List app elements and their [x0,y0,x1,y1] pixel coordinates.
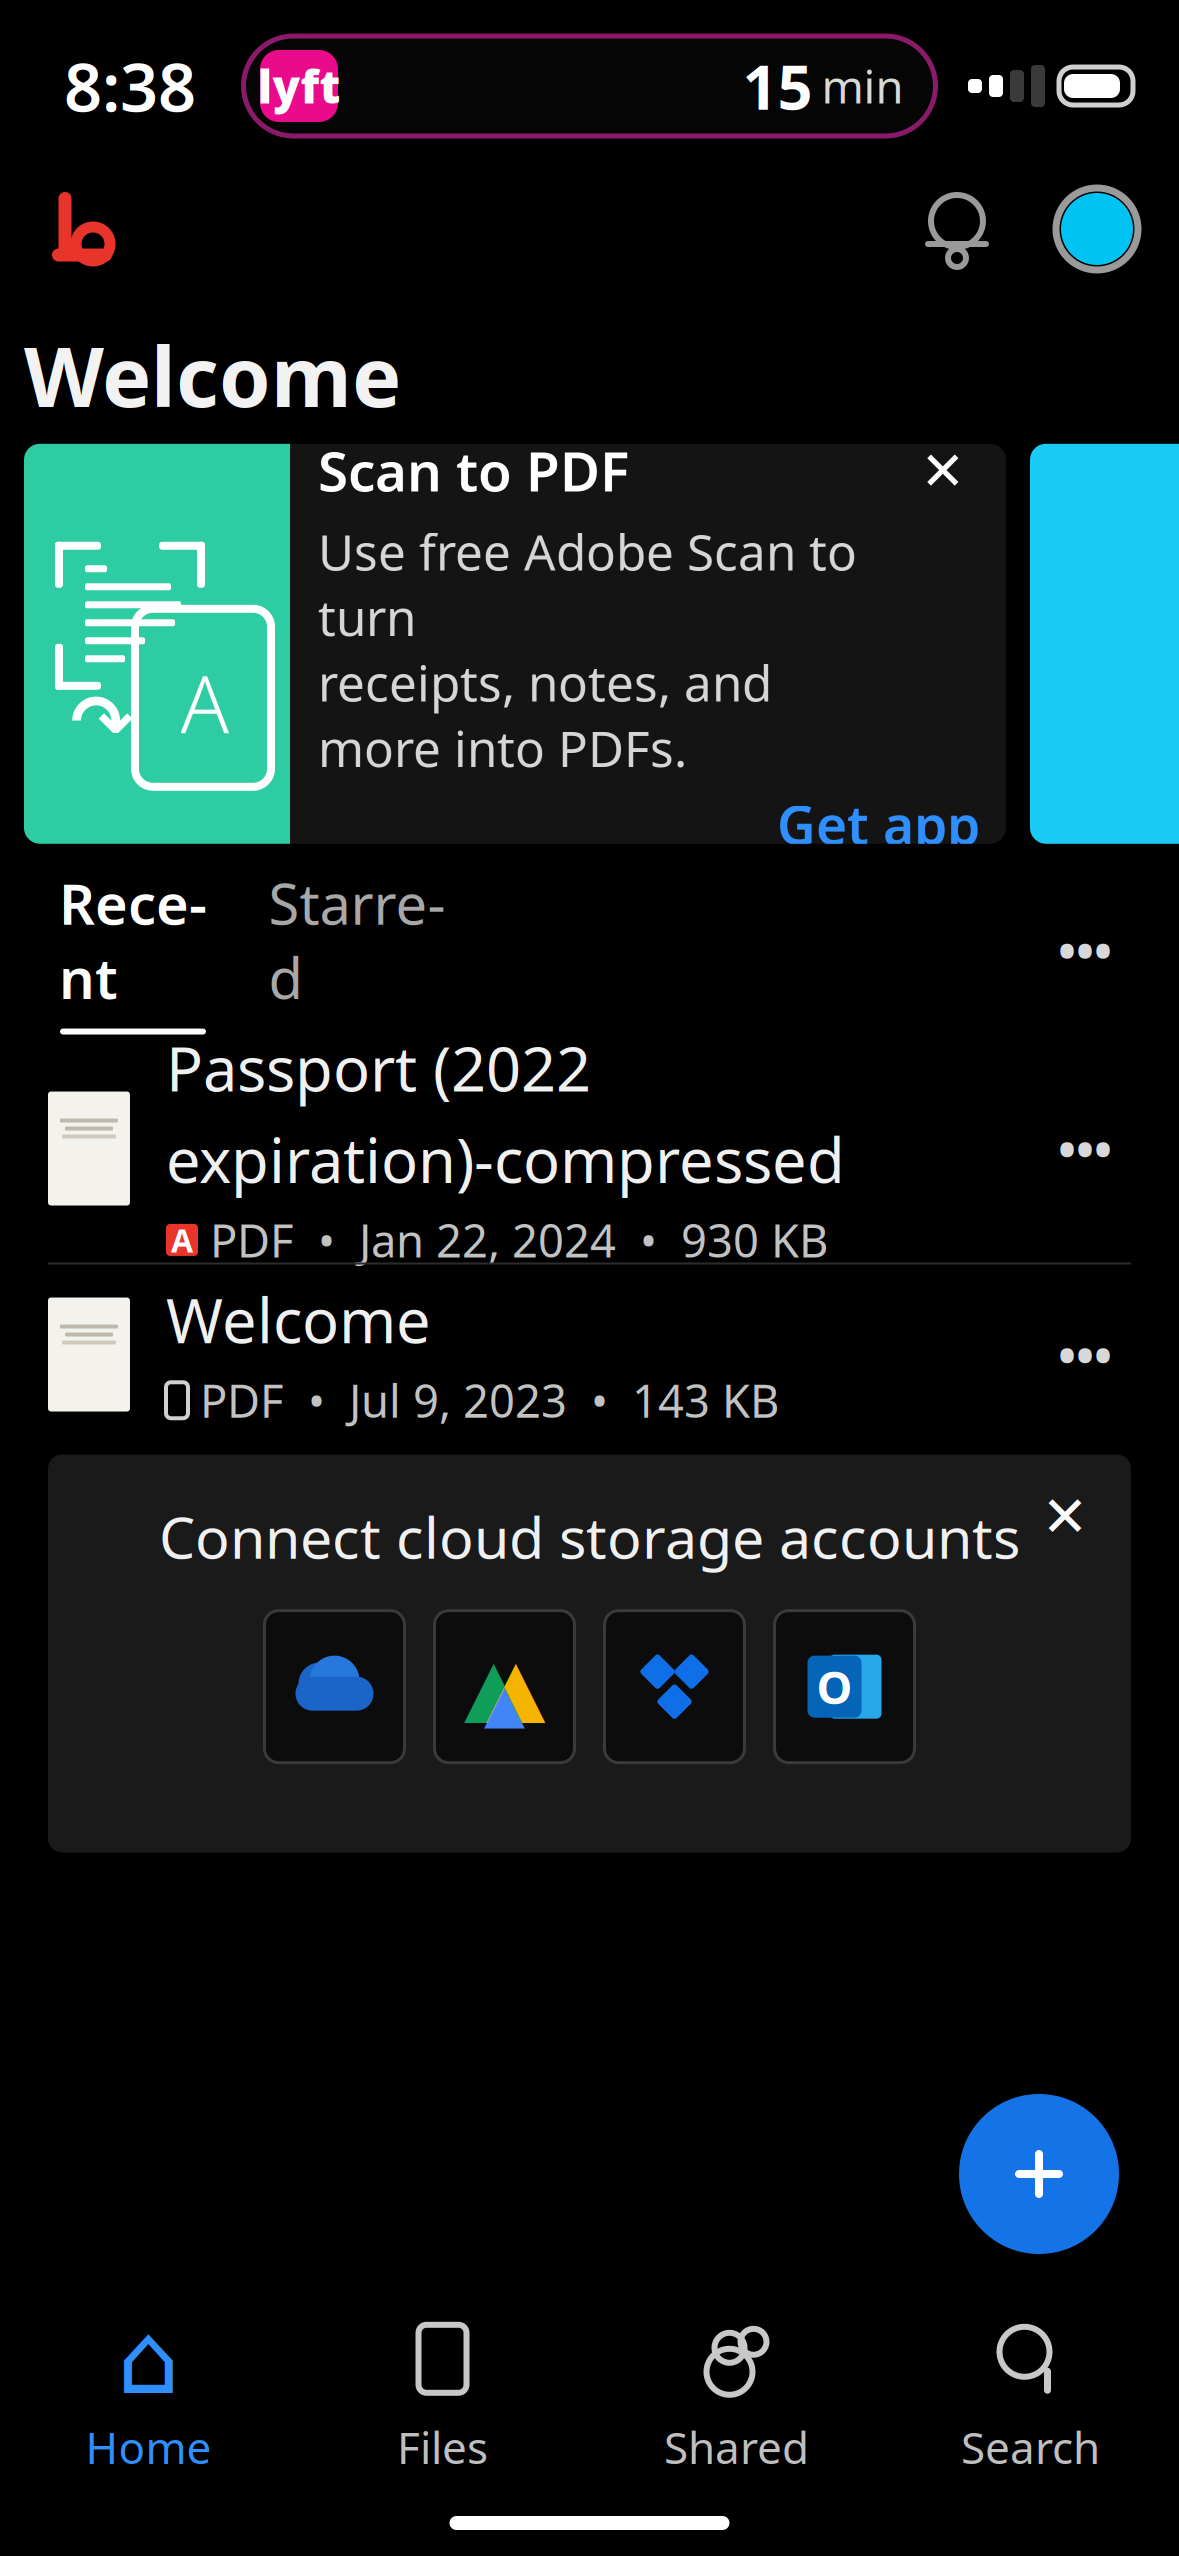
button[interactable]: ⌂ [1,2306,295,2486]
staticText: PDF • Jul 9, 2023 • 143 KB [200,1370,779,1430]
button[interactable]: More [1030,444,1179,844]
staticText: ▲ [464,1643,523,1731]
button[interactable]: OneDrive [264,1611,404,1763]
button[interactable]: Outlook [774,1611,914,1763]
staticText: Welcome [24,320,401,430]
button[interactable]: Dropbox [604,1611,744,1763]
staticText: Use free Adobe Scan to turn receipts, no… [318,519,857,781]
staticText: lyft [257,56,340,116]
button[interactable]: Passport (2022 [0,1034,1179,1262]
button[interactable]: A [24,444,1006,844]
button[interactable]: File options [1035,1309,1135,1399]
staticText: Scan to PDF [318,434,629,507]
button[interactable]: File options [1035,1103,1135,1193]
button[interactable]: Dismiss [1025,1476,1105,1556]
staticText: Recent [59,866,207,1014]
button[interactable]: Account [1049,181,1145,277]
staticText: ✕ [920,441,965,501]
staticText: Starred [268,866,445,1014]
staticText: ▲ [486,1643,545,1731]
button[interactable]: Google Drive [434,1611,574,1763]
staticText: A [171,1219,193,1261]
staticText: 15 [742,45,812,127]
staticText: Shared [664,2418,809,2476]
button[interactable]: Files [295,2306,589,2486]
staticText: Get app [777,789,980,859]
staticText: ✕ [1041,1485,1088,1548]
staticText: ••• [1058,918,1112,982]
button[interactable]: Notifications [911,183,1003,275]
button[interactable]: Adobe Acrobat [30,181,126,277]
staticText: ⌂ [117,2303,180,2415]
staticText: Passport (2022 [166,1027,591,1108]
staticText: ▲ [484,1673,525,1734]
staticText: expiration)-compressed [166,1118,845,1200]
staticText: Search [961,2418,1100,2476]
button[interactable]: Search [883,2306,1177,2486]
button[interactable]: Dismiss [906,434,980,508]
staticText: ••• [1058,1117,1112,1180]
button[interactable]: Starred [262,866,452,1034]
staticText: ↷ [70,679,133,764]
staticText: Welcome [166,1279,431,1360]
staticText: Home [85,2418,211,2476]
staticText: O [816,1656,852,1717]
button[interactable]: Welcome [0,1264,1179,1444]
button[interactable]: Recent [48,866,218,1034]
button[interactable]: Shared [589,2306,883,2486]
staticText: 8:38 [64,42,196,130]
staticText: ••• [1058,1323,1112,1386]
staticText: A [180,650,229,756]
button[interactable]: Create [951,2086,1127,2262]
staticText: PDF • Jan 22, 2024 • 930 KB [210,1210,828,1270]
staticText: min [821,56,903,116]
button[interactable]: More options [1035,910,1135,990]
staticText: Files [397,2418,488,2476]
staticText: Connect cloud storage accounts [159,1498,1020,1575]
